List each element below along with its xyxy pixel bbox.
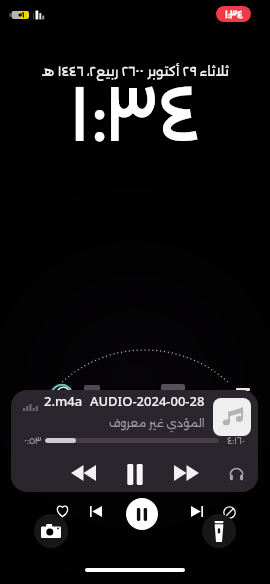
button[interactable]: Play pause	[126, 498, 158, 530]
staticText: ثلاثاء ٢٩ أكتوبر ٢٦٠٠ ربيع٢، ١٤٤٦ هـ	[42, 63, 229, 79]
button[interactable]: Pause	[121, 460, 149, 488]
staticText: ١:٣٤	[225, 8, 243, 20]
staticText: 2.m4a	[44, 392, 83, 410]
button[interactable]: Rewind	[69, 459, 97, 487]
staticText: ٤:١٦-	[227, 435, 245, 446]
button[interactable]: Output device	[222, 460, 250, 488]
staticText: المؤدي غير معروف	[109, 416, 205, 429]
staticText: ١:٣٤	[69, 69, 201, 159]
button[interactable]: Camera	[34, 514, 68, 548]
button[interactable]: Recording timer	[216, 6, 251, 22]
button[interactable]: Favorite	[51, 500, 73, 522]
button[interactable]: Next track	[186, 500, 208, 522]
staticText: ٠:٥٣	[24, 435, 42, 446]
button[interactable]: Fast forward	[172, 459, 200, 487]
button[interactable]: Previous track	[85, 500, 107, 522]
button[interactable]: Flashlight	[202, 514, 236, 548]
button[interactable]: Repeat off	[218, 501, 240, 523]
staticText: AUDIO-2024-00-28	[90, 392, 205, 410]
